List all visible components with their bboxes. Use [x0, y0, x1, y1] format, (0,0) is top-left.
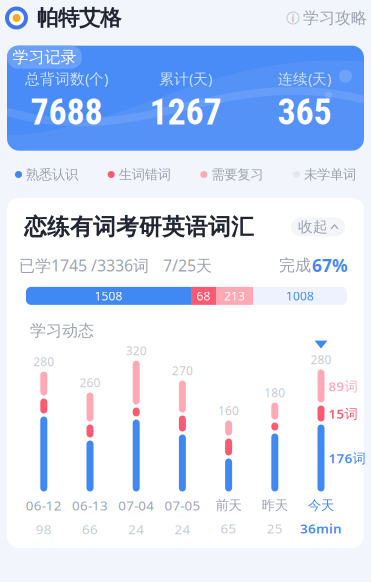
staticText: 恋练有词考研英语词汇: [24, 213, 254, 241]
staticText: 前天: [216, 497, 242, 514]
staticText: 68: [196, 288, 210, 304]
staticText: 15词: [328, 405, 357, 422]
staticText: 帕特艾格: [37, 5, 121, 31]
staticText: 365: [277, 91, 331, 133]
staticText: 07-04: [118, 496, 154, 514]
button[interactable]: i: [287, 8, 367, 28]
staticText: 66: [82, 520, 98, 538]
staticText: 熟悉认识: [26, 166, 78, 183]
staticText: 累计(天): [159, 69, 212, 88]
button[interactable]: 收起: [291, 217, 345, 236]
staticText: 180: [264, 385, 285, 400]
staticText: 176词: [328, 449, 365, 467]
staticText: 25: [267, 520, 283, 537]
staticText: 160: [218, 403, 239, 418]
staticText: 67%: [312, 254, 348, 277]
staticText: 1008: [286, 288, 314, 304]
staticText: 7688: [30, 91, 102, 133]
staticText: 总背词数(个): [25, 69, 108, 88]
staticText: 06-13: [72, 496, 108, 514]
staticText: 65: [221, 520, 237, 537]
staticText: 280: [310, 352, 331, 367]
staticText: 07-05: [164, 496, 200, 514]
staticText: i: [291, 11, 294, 25]
staticText: 320: [126, 343, 147, 358]
staticText: 89词: [328, 377, 357, 395]
staticText: 完成: [279, 255, 311, 275]
staticText: 98: [36, 520, 52, 538]
staticText: 连续(天): [278, 69, 331, 88]
staticText: 213: [224, 288, 245, 304]
staticText: 24: [128, 520, 144, 538]
staticText: 270: [172, 363, 193, 378]
staticText: 昨天: [262, 497, 288, 514]
staticText: 1267: [149, 91, 221, 133]
staticText: 收起: [298, 218, 328, 236]
staticText: 1508: [94, 288, 122, 304]
staticText: 今天: [308, 497, 334, 514]
staticText: 学习动态: [30, 321, 94, 341]
staticText: 生词错词: [119, 166, 171, 183]
staticText: 36min: [300, 520, 342, 537]
staticText: 未学单词: [304, 166, 356, 183]
staticText: 24: [174, 520, 190, 538]
staticText: 学习攻略: [303, 8, 367, 28]
staticText: 7/25天: [163, 255, 212, 276]
staticText: 已学1745 /3336词: [19, 255, 149, 276]
staticText: 06-12: [26, 496, 62, 514]
staticText: 260: [79, 375, 100, 390]
staticText: 学习记录: [12, 47, 76, 67]
staticText: 需要复习: [211, 166, 263, 183]
staticText: 280: [33, 354, 54, 369]
